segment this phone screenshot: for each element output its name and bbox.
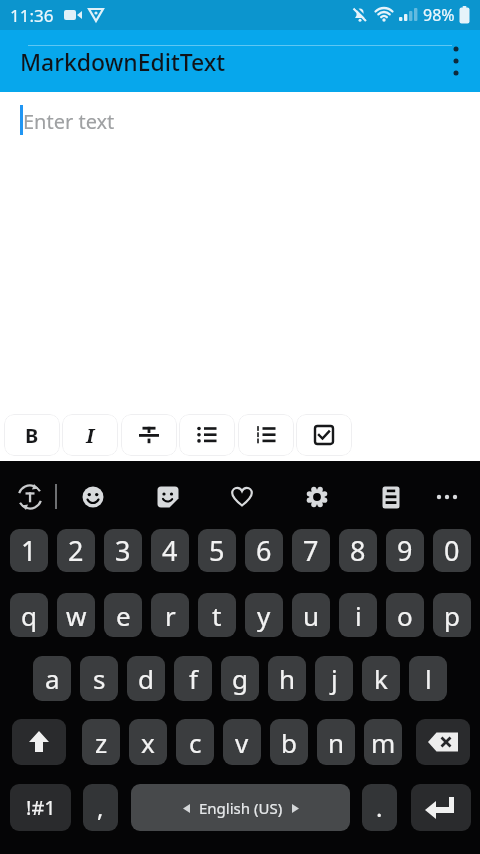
staticText: i [355, 598, 362, 633]
staticText: p [444, 598, 460, 633]
staticText: s [93, 661, 106, 696]
button[interactable]: r [151, 593, 189, 637]
button[interactable]: i [339, 593, 377, 637]
button[interactable]: !#1 [10, 784, 71, 831]
button[interactable]: j [315, 656, 353, 701]
button[interactable] [425, 475, 469, 519]
button[interactable]: x [129, 719, 167, 765]
button[interactable]: y [245, 593, 283, 637]
button[interactable]: z [82, 719, 120, 765]
staticText: o [397, 598, 413, 633]
staticText: 11:36 [10, 4, 54, 27]
button[interactable]: English (US) [131, 784, 350, 831]
button[interactable] [121, 414, 177, 456]
staticText: n [328, 725, 345, 760]
button[interactable]: B [4, 414, 60, 456]
staticText: h [279, 661, 296, 696]
button[interactable] [8, 475, 52, 519]
button[interactable]: s [80, 656, 118, 701]
button[interactable] [369, 475, 413, 519]
button[interactable]: 7 [292, 529, 330, 572]
button[interactable]: o [386, 593, 424, 637]
staticText: q [21, 598, 37, 633]
button[interactable]: w [57, 593, 95, 637]
staticText: j [331, 661, 338, 696]
staticText: MarkdownEditText [20, 46, 226, 77]
button[interactable]: p [433, 593, 471, 637]
button[interactable] [0, 92, 480, 410]
staticText: v [235, 725, 249, 760]
staticText: 8 [350, 532, 366, 569]
button[interactable]: k [362, 656, 400, 701]
staticText: 9 [397, 532, 413, 569]
button[interactable] [12, 719, 66, 765]
button[interactable] [296, 414, 352, 456]
button[interactable]: f [174, 656, 212, 701]
staticText: e [116, 598, 131, 633]
button[interactable]: 0 [433, 529, 471, 572]
staticText: m [371, 725, 396, 760]
button[interactable] [146, 475, 190, 519]
staticText: 0 [444, 532, 460, 569]
staticText: y [257, 598, 271, 633]
staticText: t [212, 598, 222, 633]
button[interactable]: I [62, 414, 118, 456]
button[interactable]: g [221, 656, 259, 701]
staticText: . [376, 791, 383, 824]
button[interactable]: b [270, 719, 308, 765]
button[interactable]: d [127, 656, 165, 701]
button[interactable] [295, 475, 339, 519]
staticText: b [281, 725, 297, 760]
button[interactable]: n [317, 719, 355, 765]
staticText: , [97, 791, 104, 824]
button[interactable]: h [268, 656, 306, 701]
button[interactable]: , [83, 784, 118, 831]
button[interactable] [179, 414, 235, 456]
button[interactable]: l [409, 656, 447, 701]
staticText: u [303, 598, 320, 633]
staticText: l [425, 661, 432, 696]
staticText: B [25, 422, 39, 449]
staticText: I [86, 422, 95, 449]
button[interactable]: 2 [57, 529, 95, 572]
staticText: r [165, 598, 176, 633]
button[interactable]: 6 [245, 529, 283, 572]
button[interactable]: 4 [151, 529, 189, 572]
button[interactable]: c [176, 719, 214, 765]
button[interactable]: q [10, 593, 48, 637]
staticText: 2 [68, 532, 84, 569]
button[interactable] [71, 475, 115, 519]
button[interactable] [432, 37, 480, 85]
button[interactable]: u [292, 593, 330, 637]
staticText: w [66, 598, 87, 633]
button[interactable]: v [223, 719, 261, 765]
button[interactable]: 9 [386, 529, 424, 572]
button[interactable] [416, 719, 470, 765]
staticText: 4 [162, 532, 178, 569]
button[interactable]: 5 [198, 529, 236, 572]
staticText: 6 [256, 532, 272, 569]
button[interactable] [411, 784, 471, 831]
staticText: x [141, 725, 155, 760]
button[interactable]: e [104, 593, 142, 637]
button[interactable]: 8 [339, 529, 377, 572]
staticText: 98% [423, 4, 455, 26]
staticText: d [138, 661, 154, 696]
staticText: f [189, 661, 198, 696]
button[interactable]: m [364, 719, 402, 765]
staticText: English (US) [199, 798, 283, 818]
button[interactable]: t [198, 593, 236, 637]
button[interactable]: 3 [104, 529, 142, 572]
button[interactable]: a [33, 656, 71, 701]
button[interactable] [220, 475, 264, 519]
staticText: k [374, 661, 388, 696]
button[interactable] [238, 414, 294, 456]
staticText: z [95, 725, 108, 760]
staticText: c [189, 725, 202, 760]
staticText: g [232, 661, 248, 696]
staticText: Enter text [23, 108, 115, 135]
staticText: 7 [303, 532, 319, 569]
staticText: 3 [115, 532, 131, 569]
button[interactable]: . [362, 784, 397, 831]
button[interactable]: 1 [10, 529, 48, 572]
